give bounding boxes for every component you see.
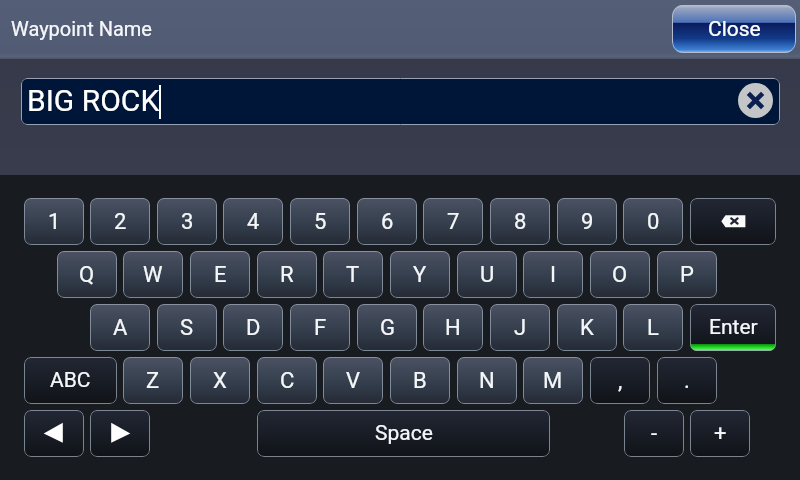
staticText: +	[714, 421, 727, 447]
button[interactable]: P	[657, 251, 717, 298]
button[interactable]: F	[290, 304, 350, 351]
button[interactable]: Close	[672, 5, 796, 53]
staticText: ,	[618, 368, 623, 394]
button[interactable]: E	[190, 251, 250, 298]
button[interactable]: 0	[623, 198, 683, 245]
button[interactable]: 1	[24, 198, 84, 245]
staticText: S	[180, 315, 194, 341]
button[interactable]: 6	[357, 198, 417, 245]
staticText: G	[380, 315, 395, 341]
button[interactable]: A	[90, 304, 150, 351]
button[interactable]: -	[624, 410, 684, 457]
staticText: L	[647, 315, 659, 341]
staticText: B	[413, 368, 427, 394]
staticText: Enter	[709, 315, 758, 340]
staticText: 6	[381, 209, 394, 235]
staticText: BIG ROCK	[27, 83, 160, 118]
button[interactable]: B	[390, 357, 450, 404]
staticText: Y	[413, 262, 427, 288]
button[interactable]: 8	[490, 198, 550, 245]
button[interactable]: Q	[57, 251, 117, 298]
button[interactable]: G	[357, 304, 417, 351]
staticText: 9	[581, 209, 594, 235]
staticText: 5	[314, 209, 327, 235]
button[interactable]: ,	[590, 357, 650, 404]
button[interactable]: 4	[223, 198, 283, 245]
button[interactable]: X	[190, 357, 250, 404]
button[interactable]: 3	[157, 198, 217, 245]
staticText: Waypoint Name	[11, 17, 152, 40]
button[interactable]: K	[557, 304, 617, 351]
button[interactable]: Backspace	[690, 198, 776, 245]
staticText: 7	[447, 209, 460, 235]
staticText: ABC	[50, 368, 91, 393]
staticText: 8	[514, 209, 527, 235]
staticText: U	[480, 262, 495, 288]
staticText: P	[680, 262, 694, 288]
button[interactable]: I	[523, 251, 583, 298]
staticText: J	[514, 315, 527, 341]
button[interactable]: W	[123, 251, 183, 298]
staticText: R	[280, 262, 294, 288]
button[interactable]: Move cursor right	[90, 410, 150, 457]
button[interactable]: Clear text	[738, 83, 773, 118]
button[interactable]: H	[423, 304, 483, 351]
staticText: T	[346, 262, 360, 288]
button[interactable]: U	[457, 251, 517, 298]
button[interactable]: Y	[390, 251, 450, 298]
button[interactable]: 7	[423, 198, 483, 245]
staticText: E	[214, 262, 227, 288]
staticText: V	[346, 368, 361, 394]
staticText: Close	[708, 17, 761, 42]
staticText: 4	[247, 209, 260, 235]
button[interactable]: Move cursor left	[24, 410, 84, 457]
staticText: H	[445, 315, 461, 341]
staticText: C	[280, 368, 295, 394]
button[interactable]: C	[257, 357, 317, 404]
button[interactable]: T	[323, 251, 383, 298]
staticText: K	[580, 315, 594, 341]
button[interactable]: Enter	[690, 304, 776, 351]
staticText: W	[143, 262, 163, 288]
button[interactable]: Z	[123, 357, 183, 404]
button[interactable]: O	[590, 251, 650, 298]
button[interactable]: Space	[257, 410, 550, 457]
staticText: X	[213, 368, 227, 394]
button[interactable]: S	[157, 304, 217, 351]
button[interactable]: N	[457, 357, 517, 404]
staticText: D	[246, 315, 261, 341]
staticText: I	[550, 262, 556, 288]
staticText: -	[651, 421, 658, 447]
button[interactable]: 2	[90, 198, 150, 245]
staticText: 1	[48, 209, 61, 235]
staticText: Space	[375, 421, 433, 446]
staticText: 2	[114, 209, 127, 235]
button[interactable]: +	[690, 410, 750, 457]
button[interactable]: .	[657, 357, 717, 404]
button[interactable]: 9	[557, 198, 617, 245]
button[interactable]: D	[223, 304, 283, 351]
staticText: F	[314, 315, 327, 341]
staticText: 0	[647, 209, 660, 235]
staticText: N	[479, 368, 495, 394]
button[interactable]: 5	[290, 198, 350, 245]
staticText: 3	[181, 209, 194, 235]
button[interactable]: BIG ROCK	[21, 78, 780, 125]
button[interactable]: ABC	[24, 357, 117, 404]
staticText: O	[612, 262, 628, 288]
staticText: M	[543, 368, 563, 394]
button[interactable]: V	[323, 357, 383, 404]
button[interactable]: J	[490, 304, 550, 351]
staticText: Z	[146, 368, 160, 394]
staticText: A	[113, 315, 128, 341]
button[interactable]: R	[257, 251, 317, 298]
button[interactable]: M	[523, 357, 583, 404]
staticText: .	[684, 368, 690, 394]
staticText: Q	[79, 262, 95, 288]
button[interactable]: L	[623, 304, 683, 351]
